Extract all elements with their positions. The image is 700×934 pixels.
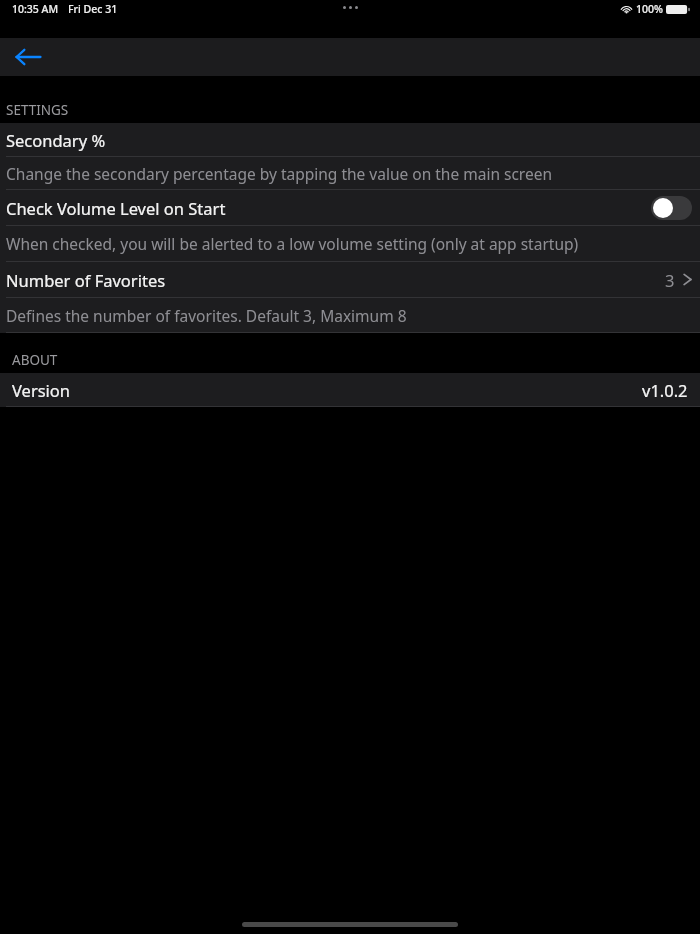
staticText: Version <box>12 379 642 401</box>
staticText: 100% <box>636 2 663 16</box>
staticText: SETTINGS <box>6 101 69 119</box>
staticText: v1.0.2 <box>642 379 688 401</box>
button[interactable]: Number of Favorites <box>0 262 700 297</box>
button[interactable]: Secondary % <box>0 123 700 156</box>
staticText: Number of Favorites <box>6 269 665 291</box>
staticText: Secondary % <box>6 129 692 151</box>
staticText: 3 <box>665 269 675 291</box>
staticText: 10:35 AM <box>12 2 59 16</box>
staticText: ABOUT <box>12 351 58 369</box>
staticText: Fri Dec 31 <box>68 2 118 16</box>
button[interactable]: Check Volume Level on Start toggle <box>651 196 692 220</box>
staticText: When checked, you will be alerted to a l… <box>6 233 579 254</box>
staticText: Check Volume Level on Start <box>6 197 651 219</box>
staticText: Defines the number of favorites. Default… <box>6 305 407 326</box>
button[interactable]: Back <box>6 38 50 76</box>
button[interactable]: Check Volume Level on Start <box>0 190 700 225</box>
button[interactable]: Version <box>0 373 700 406</box>
staticText: Change the secondary percentage by tappi… <box>6 163 553 184</box>
